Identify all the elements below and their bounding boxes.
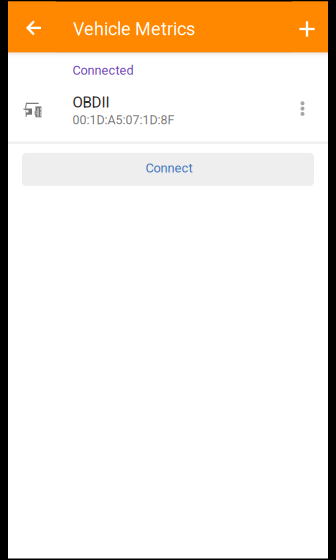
staticText: Vehicle Metrics: [73, 18, 195, 40]
staticText: 00:1D:A5:07:1D:8F: [72, 113, 174, 127]
button[interactable]: Device options: [288, 82, 324, 141]
button[interactable]: OBDII: [8, 82, 328, 141]
staticText: Connect: [145, 161, 192, 176]
button[interactable]: Add: [292, 1, 328, 52]
staticText: OBDII: [72, 93, 109, 111]
button[interactable]: Back: [8, 1, 56, 52]
button[interactable]: Connect: [22, 153, 314, 186]
staticText: Connected: [72, 63, 133, 78]
